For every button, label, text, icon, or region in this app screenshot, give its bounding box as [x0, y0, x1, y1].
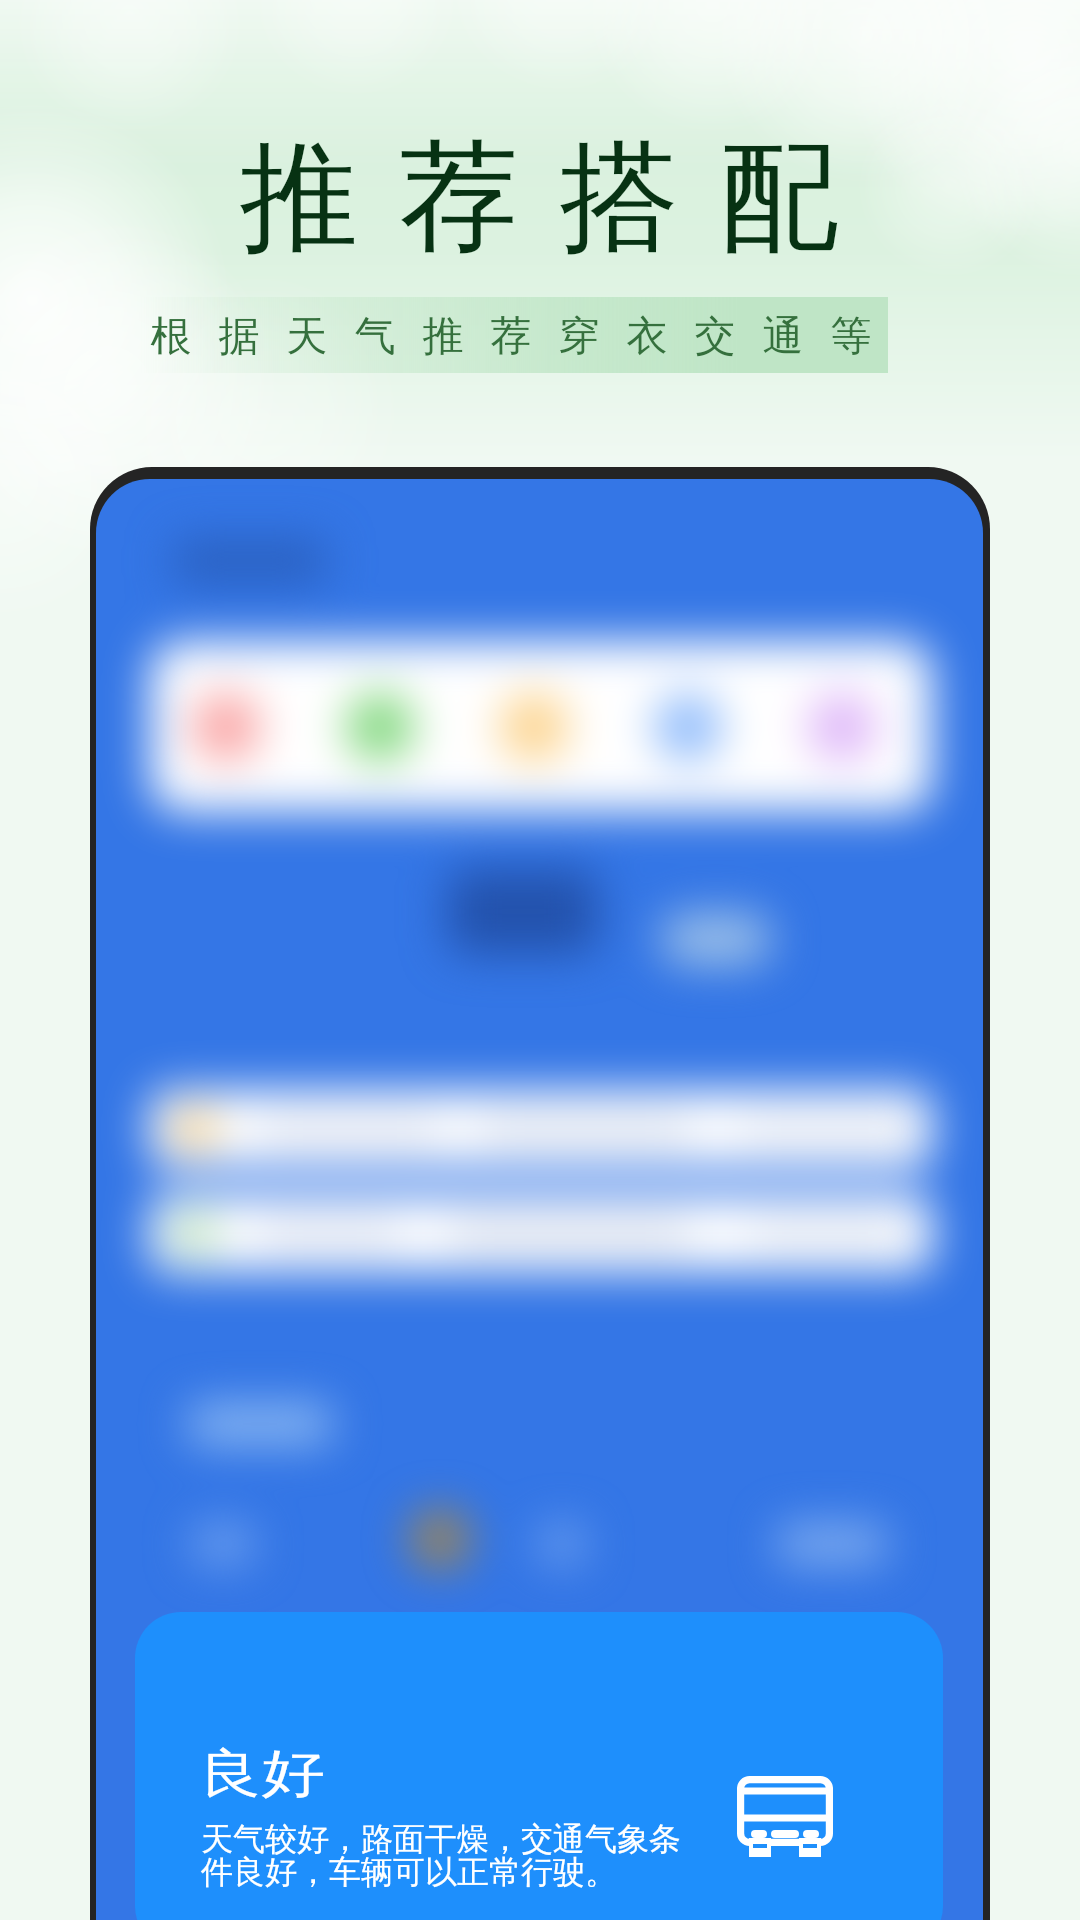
- staticText: 良好: [198, 1741, 325, 1807]
- button[interactable]: 良好: [135, 1612, 943, 1920]
- staticText: 天气较好，路面干燥，交通气象条 件良好，车辆可以正常行驶。: [201, 1819, 681, 1892]
- staticText: 推荐搭配: [219, 123, 859, 273]
- other: Bus transport: [737, 1776, 833, 1858]
- staticText: 根据天气推荐穿衣交通等: [137, 311, 885, 363]
